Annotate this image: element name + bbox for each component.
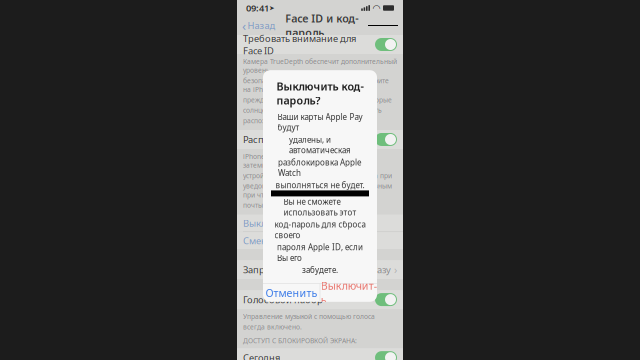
staticText: Требовать внимание для Face ID bbox=[243, 32, 356, 57]
button[interactable]: Сменить код-пароль bbox=[237, 232, 403, 249]
button[interactable]: Требовать внимание для Face ID bbox=[237, 35, 403, 54]
staticText: Выключить bbox=[321, 279, 377, 307]
staticText: ДОСТУП С БЛОКИРОВКОЙ ЭКРАНА: bbox=[243, 336, 357, 345]
staticText: Сменить код-пароль bbox=[243, 234, 336, 247]
staticText: выполняться не будет. bbox=[275, 180, 364, 190]
staticText: уведомлении или сохранять экран активным… bbox=[243, 181, 392, 199]
staticText: ➤ bbox=[269, 4, 275, 12]
staticText: разблокировка Apple Watch bbox=[278, 157, 362, 178]
staticText: Управление музыкой с помощью голоса bbox=[243, 312, 375, 321]
staticText: 09:41 bbox=[246, 2, 269, 14]
staticText: почты. bbox=[243, 201, 265, 210]
staticText: распознавание внимания. bbox=[243, 116, 330, 125]
staticText: ◠ bbox=[372, 3, 380, 13]
staticText: прежде чем разблокировать его. Некоторые bbox=[243, 95, 392, 104]
button[interactable]: Выключить код-пароль bbox=[237, 215, 403, 232]
button[interactable]: ‹ bbox=[242, 14, 275, 37]
staticText: Запрос пароля bbox=[243, 263, 311, 276]
staticText: Выключить код-пароль bbox=[243, 217, 347, 229]
staticText: Ваши карты Apple Pay будут bbox=[277, 111, 362, 133]
staticText: Назад bbox=[247, 19, 275, 32]
staticText: Выключить код-пароль? bbox=[276, 79, 363, 107]
staticText: Отменить bbox=[265, 286, 317, 300]
staticText: устройства, увеличивать громкость звука … bbox=[243, 171, 392, 180]
staticText: Голосовой набор bbox=[243, 293, 323, 306]
staticText: всегда включено. bbox=[243, 322, 302, 331]
button[interactable]: Отменить bbox=[263, 284, 320, 302]
staticText: забудете. bbox=[302, 265, 338, 275]
staticText: › bbox=[394, 262, 397, 277]
staticText: iPhone проверит внимание, прежде чем зат… bbox=[243, 152, 377, 170]
staticText: код-пароль для сброса своего bbox=[274, 219, 365, 240]
staticText: Камера TrueDepth обеспечит дополнительны… bbox=[243, 57, 397, 75]
staticText: Сегодня bbox=[243, 351, 280, 360]
staticText: удалены, и автоматическая bbox=[289, 134, 351, 155]
button[interactable]: Сегодня bbox=[237, 348, 403, 360]
button[interactable]: Голосовой набор bbox=[237, 290, 403, 309]
staticText: Сразу bbox=[365, 263, 391, 276]
staticText: безопасности, убедившись, что Вы смотрит… bbox=[243, 76, 389, 94]
staticText: пароля Apple ID, если Вы его bbox=[277, 242, 363, 263]
staticText: Face ID и код-пароль bbox=[285, 11, 358, 40]
button[interactable]: Распознавание внимания bbox=[237, 130, 403, 149]
staticText: солнцезащитные очки могут блокировать bbox=[243, 106, 382, 115]
button[interactable]: Выключить bbox=[320, 284, 377, 302]
button[interactable]: Запрос пароля bbox=[237, 260, 403, 279]
staticText: Вы не сможете использовать этот bbox=[283, 196, 356, 218]
staticText: ‹ bbox=[242, 17, 246, 34]
staticText: Распознавание внимания bbox=[243, 133, 361, 146]
